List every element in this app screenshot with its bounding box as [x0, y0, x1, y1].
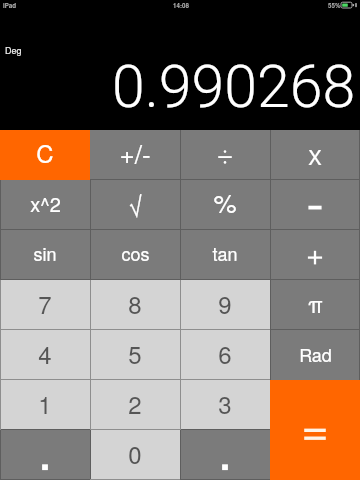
button[interactable]: cos	[90, 230, 180, 280]
staticText: 7	[38, 286, 52, 320]
staticText: tan	[212, 240, 238, 266]
button[interactable]: 6	[180, 330, 270, 380]
staticText: 0	[128, 436, 142, 470]
staticText: 14:08	[173, 1, 189, 10]
staticText: Deg	[5, 44, 22, 57]
staticText: cos	[121, 240, 150, 266]
button[interactable]: 8	[90, 280, 180, 330]
button[interactable]: √	[90, 180, 180, 230]
button[interactable]: 9	[180, 280, 270, 330]
staticText: +/-	[119, 134, 151, 171]
button[interactable]: Equals	[270, 380, 360, 480]
button[interactable]: 0	[90, 430, 180, 480]
button[interactable]: Decimal point	[0, 430, 90, 480]
staticText: 9	[218, 286, 232, 320]
button[interactable]: x^2	[0, 180, 90, 230]
button[interactable]: 4	[0, 330, 90, 380]
staticText: x^2	[30, 189, 61, 218]
staticText: 5	[128, 336, 142, 370]
staticText: 2	[128, 386, 142, 420]
staticText: 0.990268	[112, 52, 356, 121]
button[interactable]: +/-	[90, 130, 180, 180]
button[interactable]: sin	[0, 230, 90, 280]
staticText: C	[36, 135, 54, 169]
button[interactable]: 7	[0, 280, 90, 330]
staticText: 55%	[328, 1, 341, 10]
staticText: Rad	[299, 341, 332, 367]
staticText: π	[308, 288, 323, 320]
staticText: sin	[33, 240, 57, 266]
button[interactable]: 5	[90, 330, 180, 380]
button[interactable]: 1	[0, 380, 90, 430]
staticText: 3	[218, 386, 232, 420]
staticText: %	[213, 183, 237, 220]
staticText: X	[308, 142, 322, 171]
button[interactable]: 3	[180, 380, 270, 430]
staticText: √	[128, 187, 143, 224]
button[interactable]: Plus	[270, 230, 360, 280]
button[interactable]: %	[180, 180, 270, 230]
staticText: 8	[128, 286, 142, 320]
staticText: 4	[38, 336, 52, 370]
button[interactable]: 2	[90, 380, 180, 430]
staticText: 6	[218, 336, 232, 370]
staticText: 1	[38, 386, 52, 420]
button[interactable]: Decimal point	[180, 430, 270, 480]
button[interactable]: Minus	[270, 180, 360, 230]
button[interactable]: X	[270, 130, 360, 180]
button[interactable]: π	[270, 280, 360, 330]
button[interactable]: Rad	[270, 330, 360, 380]
button[interactable]: Divide	[180, 130, 270, 180]
button[interactable]: tan	[180, 230, 270, 280]
button[interactable]: C	[0, 130, 90, 180]
staticText: iPad	[3, 1, 17, 10]
